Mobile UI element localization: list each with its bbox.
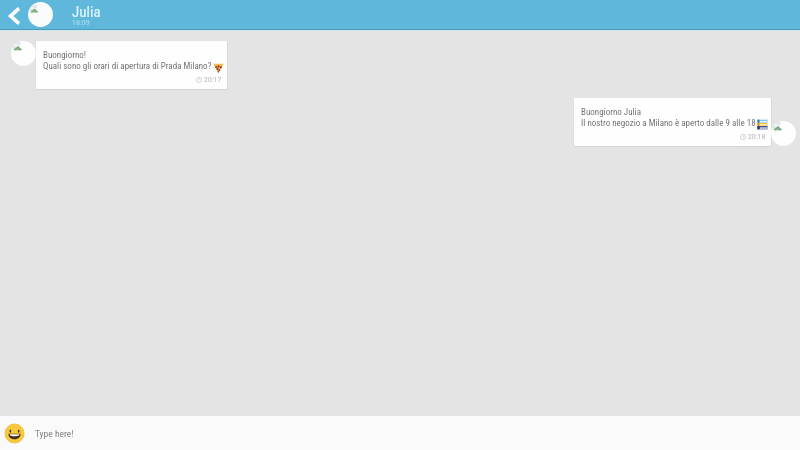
button[interactable]: Sender avatar <box>11 41 36 66</box>
button[interactable]: Emoji <box>5 424 24 443</box>
button[interactable]: Contact avatar <box>28 2 53 27</box>
staticText: Buongiorno Julia <box>581 107 641 118</box>
staticText: 20:17 <box>202 75 222 84</box>
button[interactable]: Buongiorno Julia <box>574 98 771 146</box>
button[interactable]: My avatar <box>771 121 796 146</box>
button[interactable]: Type here! <box>35 428 74 439</box>
staticText: Julia <box>72 3 101 21</box>
staticText: Il nostro negozio a Milano è aperto dall… <box>581 118 756 129</box>
staticText: Quali sono gli orari di apertura di Prad… <box>43 61 212 72</box>
button[interactable]: Back <box>0 0 28 29</box>
button[interactable]: Buongiorno! <box>36 41 227 89</box>
staticText: Buongiorno! <box>43 50 86 61</box>
staticText: Type here! <box>35 428 74 439</box>
staticText: 20:18 <box>746 132 766 141</box>
staticText: 18:09 <box>72 18 90 27</box>
